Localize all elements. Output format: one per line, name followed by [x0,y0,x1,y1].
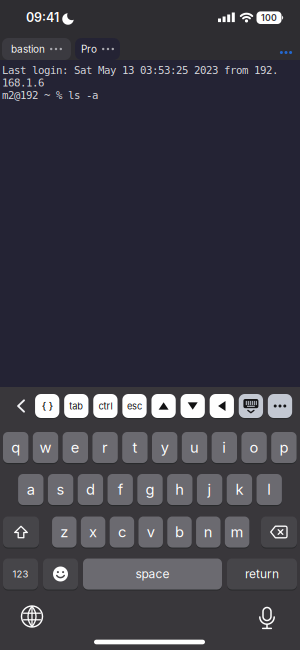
button[interactable]: d [78,474,103,505]
button[interactable]: j [197,474,222,505]
staticText: l [267,481,271,498]
button[interactable]: t [122,432,148,463]
button[interactable]: k [227,474,252,505]
button[interactable]: s [48,474,73,505]
button[interactable]: Numbers [3,558,38,589]
staticText: tab [69,400,83,412]
button[interactable]: g [137,474,163,505]
button[interactable]: q [3,432,28,463]
staticText: x [89,523,97,541]
staticText: z [60,523,68,541]
staticText: g [145,481,154,498]
staticText: y [161,439,169,456]
button[interactable]: u [182,432,207,463]
button[interactable]: bastion [2,38,71,60]
staticText: bastion [11,43,45,55]
staticText: r [102,439,108,456]
staticText: e [71,439,80,456]
button[interactable]: f [107,474,133,505]
button[interactable]: Arrow up [151,394,176,418]
button[interactable]: o [241,432,267,463]
button[interactable]: Delete [261,516,297,547]
button[interactable]: More [277,46,295,58]
staticText: f [118,481,123,498]
staticText: 123 [12,568,28,580]
staticText: k [235,481,243,498]
staticText: b [175,523,184,541]
button[interactable]: Next keyboard [17,601,47,631]
staticText: c [118,523,126,541]
button[interactable]: Tab key [64,394,88,418]
button[interactable]: Hide toolbar [11,394,31,418]
button[interactable]: m [225,516,249,547]
button[interactable]: n [196,516,221,547]
button[interactable]: l [256,474,282,505]
staticText: space [135,567,169,581]
staticText: w [39,439,51,456]
button[interactable]: Dictation [252,603,282,633]
staticText: p [279,439,288,456]
staticText: Last login: Sat May 13 03:53:25 2023 fro… [2,64,278,76]
staticText: ctrl [98,400,112,412]
staticText: Pro [81,43,97,55]
button[interactable]: Emoji [43,558,78,589]
staticText: m [231,523,244,541]
button[interactable]: x [81,516,105,547]
button[interactable]: Control key [93,394,117,418]
button[interactable]: r [92,432,118,463]
button[interactable]: space [83,558,222,589]
staticText: 09:41 [26,10,59,25]
button[interactable]: b [167,516,192,547]
button[interactable]: w [33,432,58,463]
staticText: s [57,481,65,498]
staticText: a [27,481,35,498]
button[interactable]: i [212,432,237,463]
staticText: t [132,439,137,456]
button[interactable]: p [271,432,297,463]
button[interactable]: e [63,432,88,463]
button[interactable]: h [167,474,192,505]
staticText: h [175,481,184,498]
button[interactable]: Arrow down [180,394,205,418]
staticText: return [245,567,279,581]
button[interactable]: Escape key [122,394,147,418]
staticText: q [11,439,20,456]
button[interactable]: y [152,432,177,463]
staticText: n [204,523,213,541]
button[interactable]: Arrow left [210,394,234,418]
button[interactable]: Return [227,558,297,589]
button[interactable]: More keys [268,394,292,418]
staticText: m2@192 ~ % ls -a [2,89,98,101]
staticText: j [208,481,212,498]
staticText: v [147,523,155,541]
staticText: esc [127,400,142,412]
button[interactable]: c [110,516,134,547]
staticText: i [222,439,226,456]
button[interactable]: a [18,474,43,505]
staticText: 100 [261,12,277,23]
button[interactable]: v [138,516,163,547]
button[interactable]: Pro [75,38,120,60]
staticText: 168.1.6 [2,76,44,89]
button[interactable]: Braces [35,394,59,418]
button[interactable]: z [52,516,76,547]
staticText: u [190,439,199,456]
staticText: { } [42,400,53,412]
staticText: d [86,481,95,498]
button[interactable]: Dismiss keyboard [239,394,263,418]
staticText: o [250,439,259,456]
button[interactable]: Shift [3,516,39,547]
